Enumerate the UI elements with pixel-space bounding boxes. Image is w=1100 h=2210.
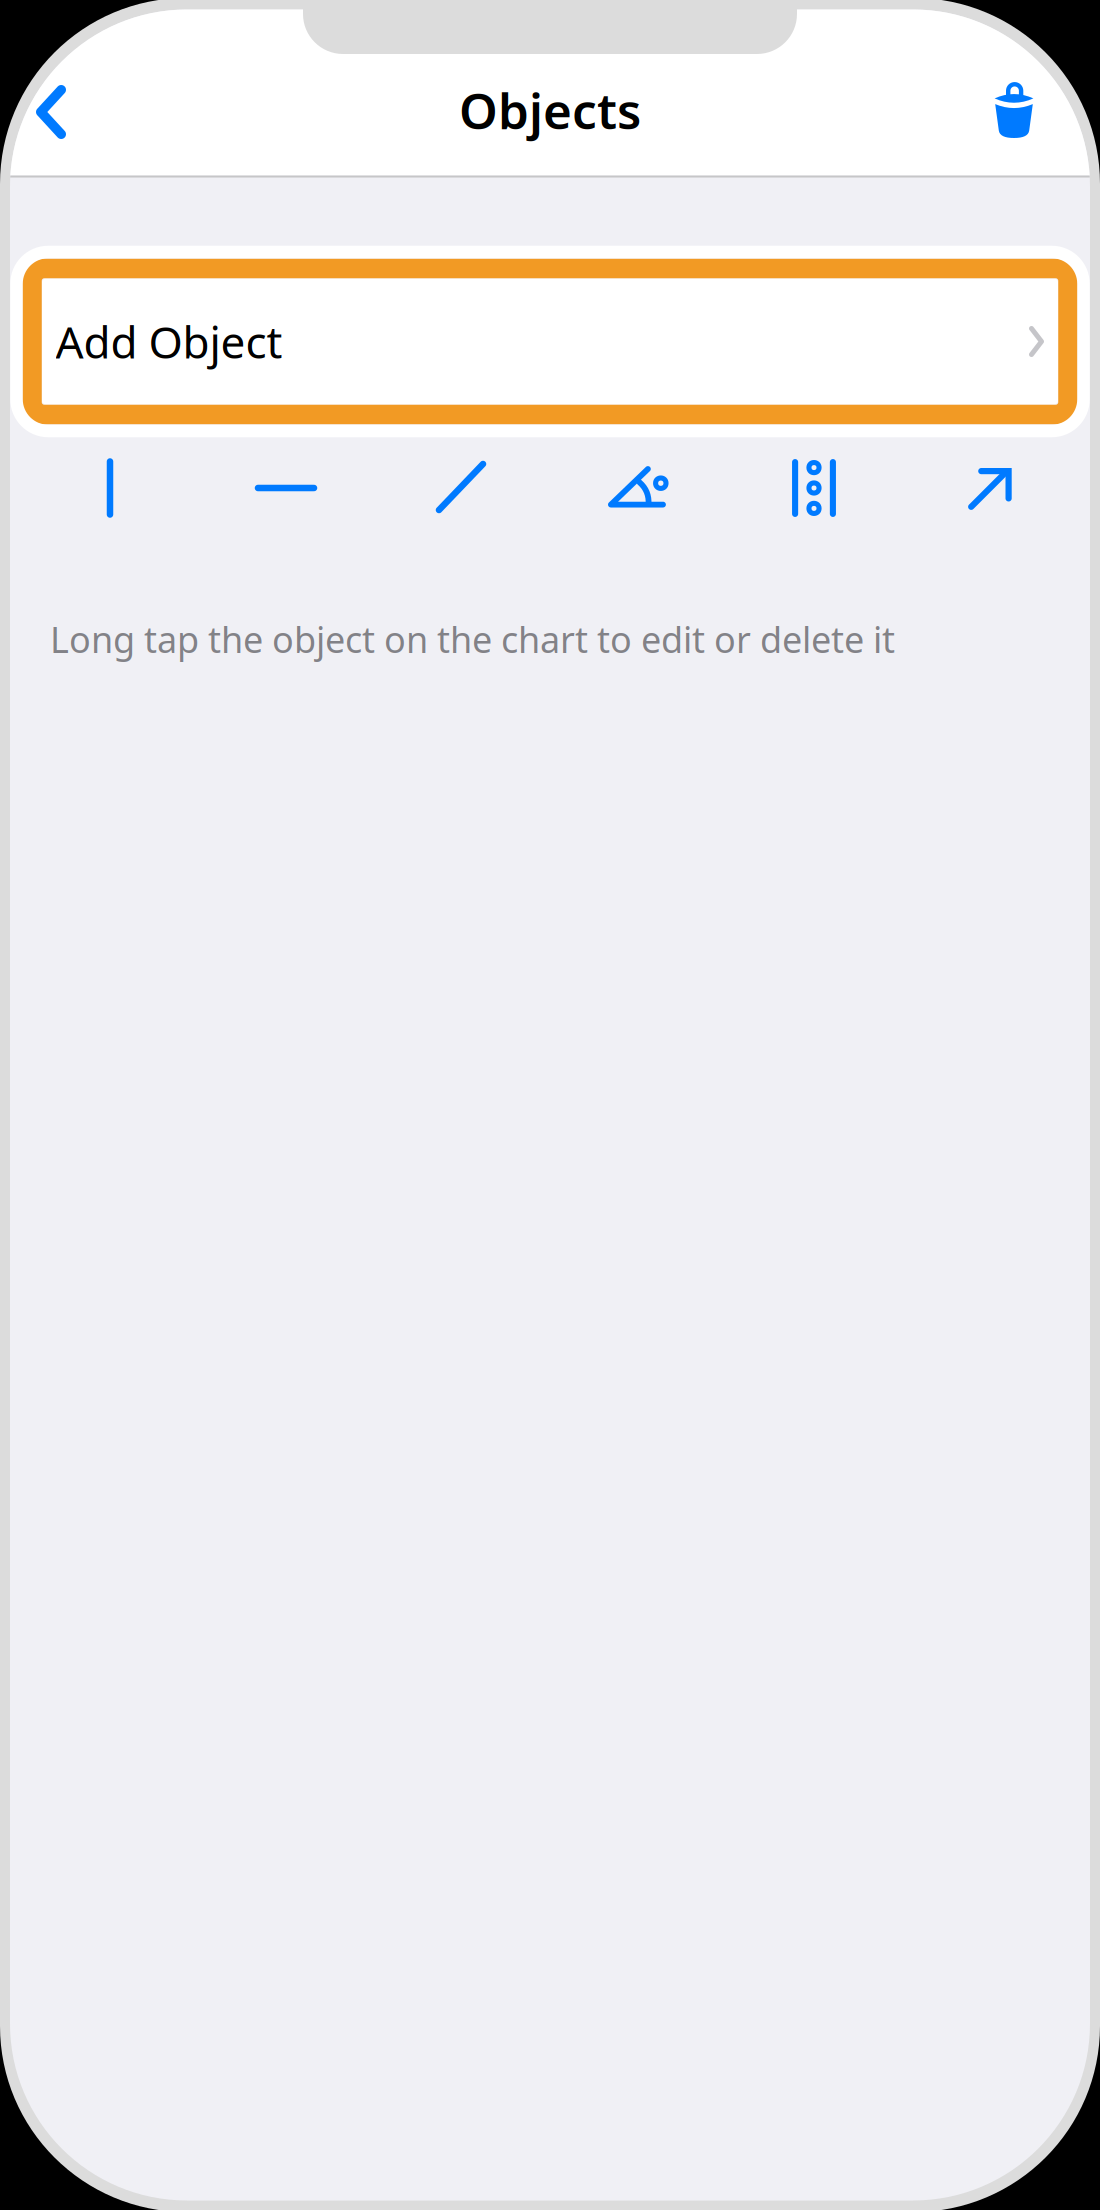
button[interactable]: Back — [9, 60, 93, 164]
button[interactable]: Add Object — [10, 246, 1090, 437]
staticText: Long tap the object on the chart to edit… — [50, 615, 895, 663]
button[interactable]: Fibonacci levels — [726, 445, 902, 531]
button[interactable]: Vertical line — [22, 445, 198, 531]
button[interactable]: Delete all objects — [972, 59, 1056, 163]
staticText: Objects — [459, 77, 641, 143]
button[interactable]: Horizontal line — [198, 445, 374, 531]
button[interactable]: Arrow — [902, 445, 1078, 531]
button[interactable]: Trend line — [374, 445, 550, 531]
staticText: Add Object — [55, 312, 282, 371]
button[interactable]: Angle — [550, 445, 726, 531]
